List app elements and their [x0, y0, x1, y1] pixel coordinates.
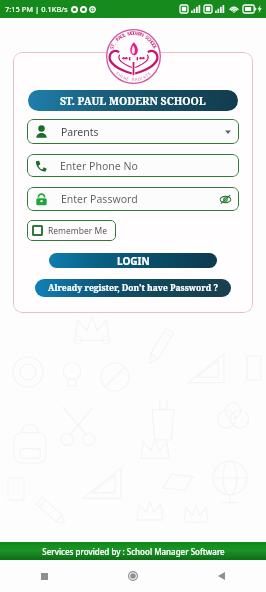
button[interactable]: ST. PAUL MODERN SCHOOL: [28, 90, 238, 111]
staticText: Parents: [61, 125, 99, 139]
staticText: Services provided by : School Manager So…: [42, 546, 225, 557]
button[interactable]: LOGIN: [49, 253, 217, 268]
button[interactable]: Show password: [220, 194, 231, 205]
button[interactable]: Parents: [35, 119, 231, 144]
button[interactable]: Already register, Don't have Password ?: [35, 279, 231, 297]
staticText: ST. PAUL MODERN SCHOOL: [60, 94, 206, 108]
button[interactable]: Home: [88, 560, 177, 592]
staticText: Enter Phone No: [60, 159, 138, 173]
staticText: LOGIN: [117, 254, 150, 268]
staticText: Remember Me: [48, 225, 108, 237]
button[interactable]: Enter Phone No: [35, 154, 231, 177]
staticText: Already register, Don't have Password ?: [48, 282, 219, 294]
button[interactable]: Back: [177, 560, 266, 592]
button[interactable]: Remember Me: [32, 220, 112, 241]
button[interactable]: Enter Password: [35, 187, 231, 211]
button[interactable]: Recents: [0, 560, 88, 592]
staticText: Enter Password: [61, 192, 138, 206]
staticText: 7:15 PM | 0.1KB/s: [5, 4, 68, 14]
